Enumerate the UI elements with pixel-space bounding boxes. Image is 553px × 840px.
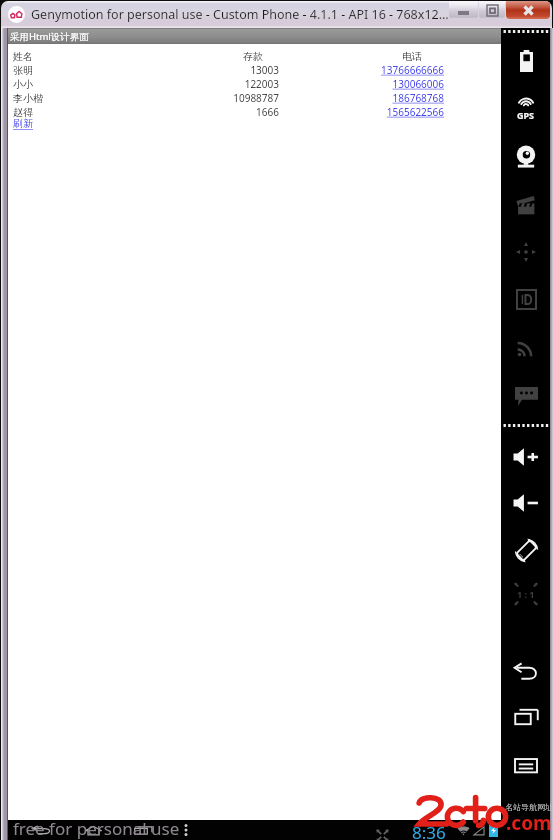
staticText: 赵得 bbox=[13, 106, 113, 119]
button[interactable]: Messages bbox=[509, 378, 543, 412]
staticText: 130066006 bbox=[279, 77, 444, 91]
button[interactable]: 刷新 bbox=[13, 117, 33, 130]
button[interactable]: Home bbox=[81, 820, 106, 840]
staticText: 1 : 1 bbox=[517, 588, 535, 600]
staticText: 13766666666 bbox=[279, 63, 444, 77]
staticText: 李小楷 bbox=[13, 92, 113, 105]
staticText: GPS bbox=[517, 109, 535, 121]
staticText: 小小 bbox=[13, 78, 113, 91]
button[interactable]: Identifiers bbox=[509, 282, 543, 316]
staticText: 1565622566 bbox=[279, 105, 444, 119]
button[interactable]: Recents bbox=[130, 820, 157, 840]
staticText: 122003 bbox=[108, 77, 279, 91]
button[interactable]: Volume down bbox=[509, 486, 543, 520]
button[interactable]: Rotate screen bbox=[509, 533, 543, 567]
staticText: 存款 bbox=[92, 50, 263, 63]
button[interactable]: More options bbox=[176, 820, 196, 840]
staticText: 姓名 bbox=[13, 50, 113, 63]
button[interactable]: Camera bbox=[509, 140, 543, 174]
staticText: 186768768 bbox=[279, 91, 444, 105]
staticText: 采用Html设计界面 bbox=[10, 30, 89, 43]
button[interactable]: GPS bbox=[509, 91, 543, 125]
staticText: free for personal use bbox=[13, 817, 180, 840]
button[interactable]: Back bbox=[509, 654, 543, 688]
button[interactable]: Network bbox=[509, 330, 543, 364]
staticText: 张明 bbox=[13, 64, 113, 77]
button[interactable]: Battery bbox=[509, 44, 543, 78]
button[interactable]: Maximize bbox=[479, 1, 505, 19]
staticText: Genymotion for personal use - Custom Pho… bbox=[31, 6, 449, 23]
button[interactable]: Menu bbox=[509, 748, 543, 782]
button[interactable]: Video recorder bbox=[509, 187, 543, 221]
staticText: 10988787 bbox=[108, 91, 279, 105]
button[interactable]: Navigation pad bbox=[509, 235, 543, 269]
button[interactable]: Recents bbox=[509, 700, 543, 734]
button[interactable]: Back bbox=[28, 820, 55, 840]
button[interactable]: Close bbox=[506, 1, 550, 19]
staticText: 1666 bbox=[108, 105, 279, 119]
staticText: .com bbox=[506, 810, 552, 836]
staticText: 13003 bbox=[108, 63, 279, 77]
button[interactable]: Minimize bbox=[449, 1, 478, 19]
button[interactable]: Scale one to one bbox=[509, 577, 543, 611]
staticText: 电话 bbox=[257, 50, 422, 63]
staticText: 名站导航网址 bbox=[505, 802, 553, 812]
staticText: 8:36 bbox=[412, 821, 446, 840]
button[interactable]: Volume up bbox=[509, 440, 543, 474]
staticText: 刷新 bbox=[13, 117, 33, 130]
